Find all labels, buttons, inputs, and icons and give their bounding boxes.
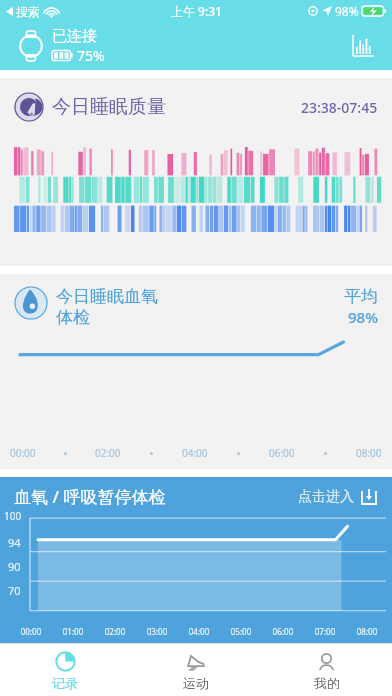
button[interactable]: 血氧 / 呼吸暂停体检 xyxy=(0,477,392,657)
other: Enter detail xyxy=(360,488,378,506)
staticText: 06:00 xyxy=(262,626,304,637)
staticText: 我的 xyxy=(314,675,340,691)
staticText: 今日睡眠质量 xyxy=(52,95,166,119)
button[interactable]: 今日睡眠血氧 xyxy=(0,274,392,469)
button[interactable]: 今日睡眠质量 xyxy=(0,78,392,266)
staticText: 04:00 xyxy=(178,626,220,637)
staticText: 00:00 xyxy=(10,626,52,637)
staticText: 搜索 xyxy=(16,4,40,19)
staticText: 03:00 xyxy=(136,626,178,637)
button[interactable]: 记录 xyxy=(0,644,130,696)
staticText: 94 xyxy=(8,535,21,550)
staticText: 睡眠暂停 xyxy=(255,641,307,657)
staticText: 运动 xyxy=(183,675,209,691)
staticText: 07:00 xyxy=(304,626,346,637)
staticText: 已连接 xyxy=(52,27,97,46)
staticText: 08:00 xyxy=(356,446,382,460)
staticText: 05:00 xyxy=(220,626,262,637)
staticText: 98% xyxy=(348,307,378,327)
staticText: 90 xyxy=(8,559,21,574)
staticText: 记录 xyxy=(52,675,78,691)
staticText: 75% xyxy=(77,46,105,65)
staticText: 100 xyxy=(4,509,22,523)
staticText: 70 xyxy=(8,583,21,598)
staticText: 点击进入 xyxy=(298,488,354,506)
staticText: 01:00 xyxy=(52,626,94,637)
staticText: 02:00 xyxy=(94,626,136,637)
staticText: 23:38-07:45 xyxy=(301,98,378,117)
staticText: 实时血氧 xyxy=(99,641,151,657)
staticText: 08:00 xyxy=(346,626,388,637)
staticText: 04:00 xyxy=(182,446,208,460)
staticText: 血氧 / 呼吸暂停体检 xyxy=(14,485,166,508)
staticText: 今日睡眠血氧 xyxy=(56,286,158,307)
staticText: 98% xyxy=(335,3,359,19)
staticText: 02:00 xyxy=(95,446,121,460)
staticText: 00:00 xyxy=(10,446,36,460)
button[interactable]: Statistics xyxy=(348,31,378,61)
button[interactable]: 我的 xyxy=(261,644,392,696)
staticText: 体检 xyxy=(56,307,90,328)
staticText: 06:00 xyxy=(269,446,295,460)
staticText: 上午 9:31 xyxy=(171,3,222,19)
button[interactable]: 运动 xyxy=(130,644,261,696)
staticText: 平均 xyxy=(344,286,378,307)
